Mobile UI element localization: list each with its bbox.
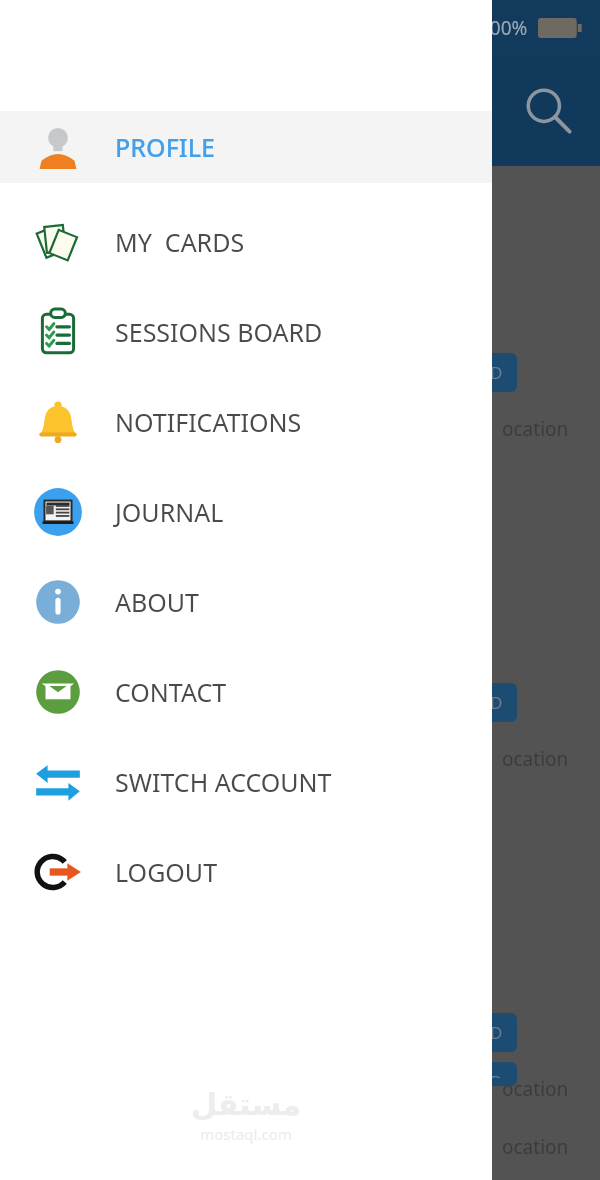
staticText: mostaql.com — [200, 1124, 292, 1144]
staticText: CONTACT — [115, 675, 227, 709]
staticText: ocation — [502, 1134, 569, 1158]
staticText: PAID — [464, 1070, 503, 1078]
staticText: JOURNAL — [115, 495, 224, 529]
staticText: ocation — [502, 1076, 569, 1102]
staticText: NOTIFICATIONS — [115, 405, 302, 439]
button[interactable]: NOTIFICATIONS — [0, 391, 492, 453]
button[interactable]: ABOUT — [0, 571, 492, 633]
button[interactable]: CONTACT — [0, 661, 492, 723]
button[interactable]: SESSIONS BOARD — [0, 301, 492, 363]
staticText: PAID — [464, 1021, 503, 1044]
staticText: SWITCH ACCOUNT — [115, 765, 332, 799]
button[interactable]: JOURNAL — [0, 481, 492, 543]
staticText: SESSIONS BOARD — [115, 315, 323, 349]
button[interactable]: Search — [522, 85, 574, 137]
staticText: PAID — [464, 691, 503, 714]
button[interactable]: MY CARDS — [0, 211, 492, 273]
staticText: PAID — [464, 361, 503, 384]
staticText: ocation — [502, 416, 569, 442]
staticText: ocation — [502, 746, 569, 772]
button[interactable]: LOGOUT — [0, 841, 492, 903]
staticText: 100% — [479, 15, 528, 41]
staticText: PROFILE — [115, 130, 215, 164]
staticText: ABOUT — [115, 585, 199, 619]
button[interactable]: SWITCH ACCOUNT — [0, 751, 492, 813]
button[interactable]: PROFILE — [0, 111, 492, 183]
staticText: مستقل — [191, 1087, 301, 1122]
staticText: MY CARDS — [115, 225, 245, 259]
staticText: LOGOUT — [115, 855, 218, 889]
